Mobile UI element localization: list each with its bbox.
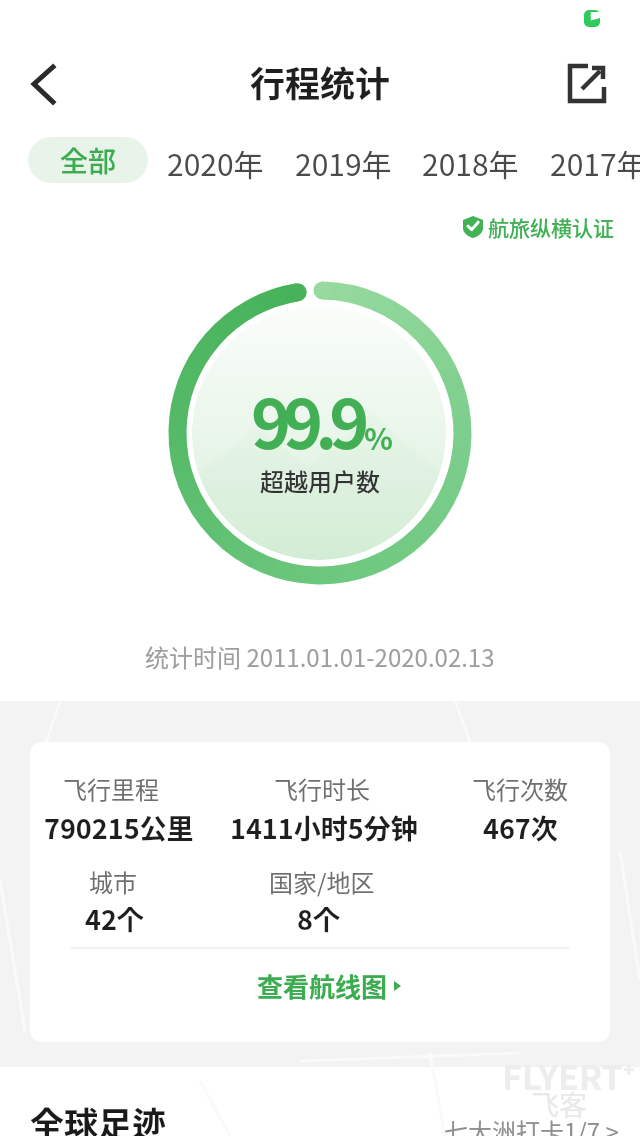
staticText: 467次 xyxy=(483,808,558,847)
button[interactable] xyxy=(556,56,616,112)
button[interactable]: 七大洲打卡1/7 > xyxy=(444,1113,624,1136)
staticText: 790215公里 xyxy=(44,808,194,847)
staticText: 2020年 xyxy=(167,141,264,184)
staticText: 全球足迹 xyxy=(30,1098,166,1136)
staticText: 全部 xyxy=(60,140,117,181)
staticText: 航旅纵横认证 xyxy=(488,212,614,242)
staticText: 七大洲打卡1/7 > xyxy=(444,1113,619,1136)
staticText: 8个 xyxy=(297,899,340,938)
button[interactable]: 2019年 xyxy=(143,141,543,184)
staticText: 飞行时长 xyxy=(274,771,370,806)
staticText: 42个 xyxy=(85,899,144,938)
button[interactable]: 2017年 xyxy=(538,141,640,184)
staticText: 超越用户数 xyxy=(260,463,380,498)
staticText: 城市 xyxy=(89,864,137,899)
staticText: 统计时间 2011.01.01-2020.02.13 xyxy=(145,639,495,674)
button[interactable] xyxy=(16,56,72,112)
button[interactable]: 全部 xyxy=(28,137,148,183)
staticText: 1411小时5分钟 xyxy=(230,808,418,847)
staticText: 国家/地区 xyxy=(269,864,375,899)
button[interactable]: 查看航线图 xyxy=(220,962,440,1010)
button[interactable]: 2018年 xyxy=(270,141,640,184)
staticText: 2019年 xyxy=(295,141,392,184)
staticText: 查看航线图 xyxy=(257,967,388,1005)
staticText: FLYERT⁺ xyxy=(502,1051,635,1100)
staticText: 2018年 xyxy=(422,141,519,184)
staticText: 行程统计 xyxy=(250,56,391,107)
staticText: 飞行次数 xyxy=(472,771,568,806)
button[interactable]: 航旅纵横认证 xyxy=(455,206,620,250)
staticText: 99.9 xyxy=(251,370,362,468)
staticText: 2017年 xyxy=(550,141,640,184)
staticText: 飞行里程 xyxy=(63,771,159,806)
staticText: % xyxy=(364,415,393,458)
button[interactable]: 2020年 xyxy=(15,141,415,184)
staticText: 飞客 xyxy=(531,1084,588,1125)
